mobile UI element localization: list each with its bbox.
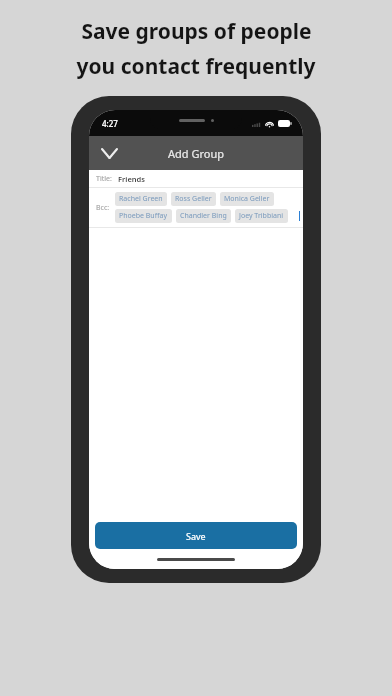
staticText: Rachel Green — [119, 194, 163, 204]
staticText: Save — [186, 530, 206, 542]
button[interactable]: Monica Geller — [220, 192, 274, 206]
button[interactable]: Save — [95, 522, 297, 549]
staticText: Phoebe Buffay — [119, 211, 168, 221]
button[interactable]: Phoebe Buffay — [115, 209, 172, 223]
staticText: Joey Tribbiani — [239, 211, 284, 221]
button[interactable]: Rachel Green — [115, 192, 167, 206]
staticText: Save groups of people — [81, 17, 312, 46]
staticText: Monica Geller — [224, 194, 270, 204]
button[interactable]: Ross Geller — [171, 192, 216, 206]
staticText: Title: — [96, 174, 112, 184]
button[interactable]: Chandler Bing — [176, 209, 231, 223]
staticText: Ross Geller — [175, 194, 212, 204]
button[interactable]: Joey Tribbiani — [235, 209, 288, 223]
staticText: 4:27 — [102, 118, 118, 129]
button[interactable]: Collapse — [95, 139, 123, 167]
staticText: Add Group — [168, 146, 224, 161]
staticText: Friends — [118, 174, 145, 184]
staticText: Chandler Bing — [180, 211, 227, 221]
staticText: you contact frequently — [76, 52, 316, 81]
staticText: Bcc: — [96, 203, 110, 213]
